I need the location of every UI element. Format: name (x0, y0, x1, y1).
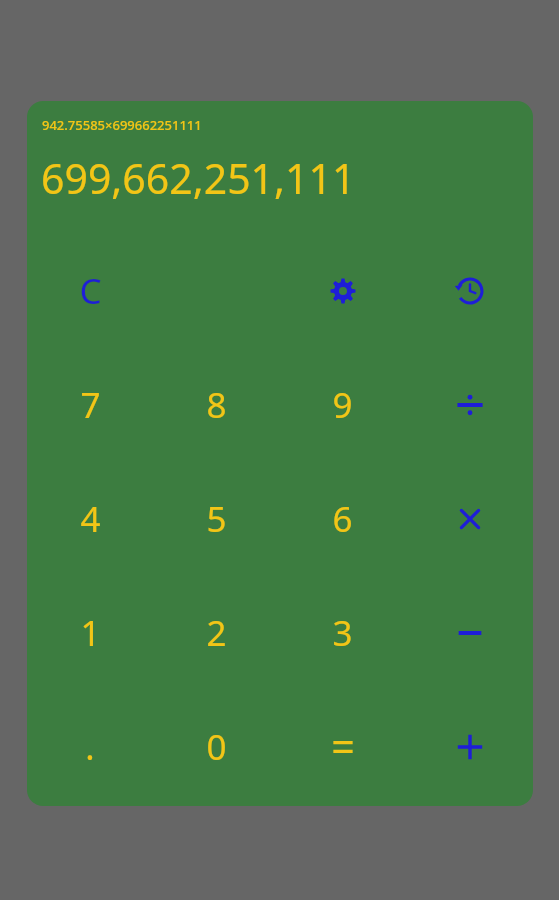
button[interactable]: Multiply (406, 462, 533, 576)
button[interactable]: 0 (153, 690, 279, 804)
staticText: 699,662,251,111 (41, 150, 356, 206)
staticText: 1 (80, 609, 101, 657)
staticText: 7 (80, 381, 101, 429)
staticText: C (79, 267, 102, 315)
button[interactable]: Divide (406, 348, 533, 462)
staticText: 0 (206, 723, 227, 771)
button[interactable]: 4 (27, 462, 153, 576)
staticText: 2 (206, 609, 227, 657)
staticText: 6 (332, 495, 353, 543)
button[interactable]: C (27, 234, 153, 348)
button[interactable]: 2 (153, 576, 279, 690)
button[interactable]: 7 (27, 348, 153, 462)
button[interactable]: 9 (279, 348, 406, 462)
staticText: 5 (206, 495, 227, 543)
button[interactable]: 6 (279, 462, 406, 576)
button[interactable]: 5 (153, 462, 279, 576)
button[interactable]: 8 (153, 348, 279, 462)
staticText: 942.75585×699662251111 (42, 116, 202, 134)
staticText: 3 (332, 609, 353, 657)
staticText: . (85, 723, 95, 771)
button[interactable]: 1 (27, 576, 153, 690)
button[interactable]: Equals (279, 690, 406, 804)
button[interactable]: Minus (406, 576, 533, 690)
staticText: 4 (80, 495, 101, 543)
button[interactable]: Settings (279, 234, 406, 348)
staticText: 9 (332, 381, 353, 429)
button[interactable]: Plus (406, 690, 533, 804)
staticText: 8 (206, 381, 227, 429)
button[interactable]: History (406, 234, 533, 348)
button[interactable]: 3 (279, 576, 406, 690)
button[interactable]: . (27, 690, 153, 804)
